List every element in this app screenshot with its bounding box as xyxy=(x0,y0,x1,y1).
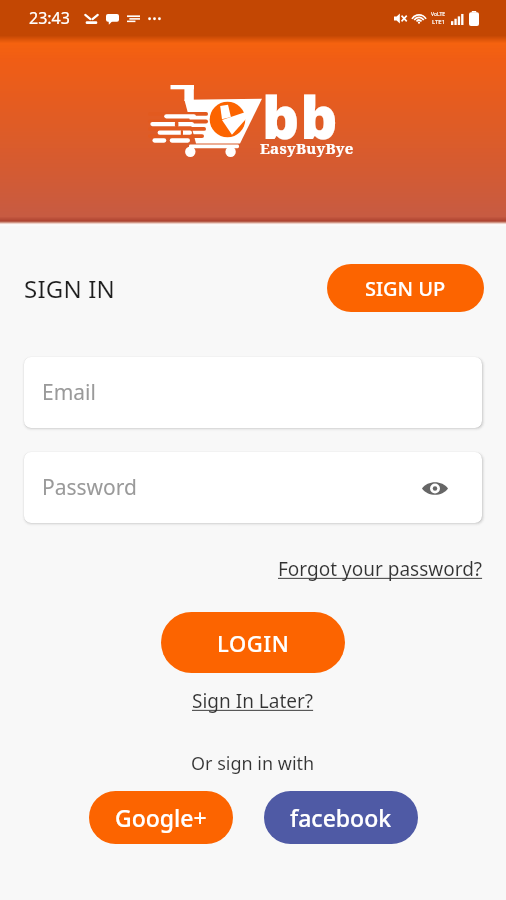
staticText: facebook xyxy=(290,802,392,833)
button[interactable]: SIGN UP xyxy=(327,264,484,312)
staticText: SIGN UP xyxy=(365,275,446,302)
staticText: 23:43 xyxy=(29,7,70,29)
button[interactable]: Sign In Later? xyxy=(192,688,314,714)
button[interactable]: facebook xyxy=(264,791,418,844)
button[interactable]: Password xyxy=(24,452,482,523)
staticText: SIGN IN xyxy=(24,272,116,305)
staticText: VoLTE xyxy=(431,11,446,18)
button[interactable]: Email xyxy=(24,357,482,428)
staticText: bb xyxy=(262,77,339,155)
staticText: LOGIN xyxy=(217,628,290,658)
staticText: Or sign in with xyxy=(191,751,315,776)
staticText: Google+ xyxy=(115,802,207,833)
button[interactable]: Show password xyxy=(420,473,450,503)
staticText: EasyBuyBye xyxy=(260,138,354,158)
staticText: LTE1 xyxy=(432,18,446,26)
button[interactable]: Google+ xyxy=(89,791,233,844)
button[interactable]: Forgot your password? xyxy=(278,556,483,582)
staticText: Email xyxy=(42,378,96,407)
staticText: Password xyxy=(42,473,137,502)
button[interactable]: LOGIN xyxy=(161,612,345,673)
